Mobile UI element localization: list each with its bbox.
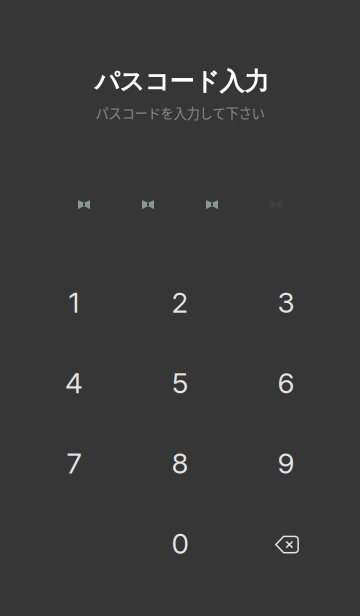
button[interactable]: Delete	[233, 503, 339, 584]
button[interactable]: 8	[127, 423, 233, 503]
button[interactable]: 5	[127, 343, 233, 423]
staticText: 2	[171, 286, 188, 320]
staticText: 6	[277, 366, 294, 400]
button[interactable]: 0	[127, 503, 233, 584]
staticText: 4	[65, 366, 83, 400]
button[interactable]: 3	[233, 262, 339, 343]
button[interactable]: 4	[21, 343, 127, 423]
staticText: 7	[66, 446, 81, 480]
button[interactable]: 1	[21, 262, 127, 343]
staticText: 3	[277, 286, 294, 320]
staticText: パスコードを入力して下さい	[95, 103, 264, 122]
staticText: 9	[277, 446, 294, 480]
button[interactable]: 6	[233, 343, 339, 423]
staticText: 5	[172, 366, 188, 400]
button[interactable]: 7	[21, 423, 127, 503]
staticText: パスコード入力	[94, 66, 269, 97]
staticText: 8	[171, 446, 188, 480]
staticText: 0	[171, 527, 188, 560]
staticText: 1	[68, 286, 79, 320]
button[interactable]: 2	[127, 262, 233, 343]
button[interactable]: 9	[233, 423, 339, 503]
